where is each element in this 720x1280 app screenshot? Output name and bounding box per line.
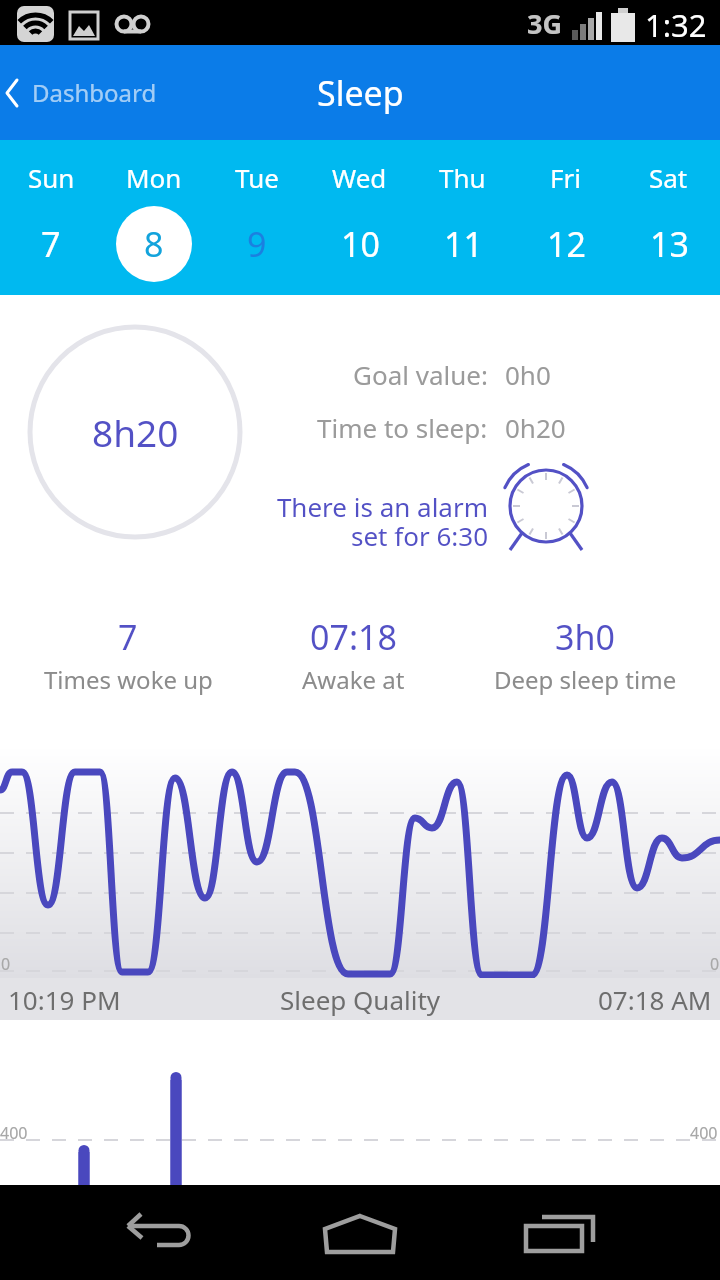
staticText: 0 [1,953,11,975]
staticText: 9 [247,221,267,267]
staticText: Sun [28,160,75,195]
staticText: Time to sleep: [317,410,488,445]
staticText: There is an alarm set for 6:30 [243,489,488,553]
button[interactable]: Dashboard [0,76,157,109]
staticText: 400 [690,1122,718,1144]
button[interactable]: Sat [617,140,720,295]
staticText: 0h0 [505,357,551,392]
staticText: 07:18 AM [598,982,712,1017]
button[interactable]: Mon [102,140,205,295]
staticText: 8 [144,221,164,267]
staticText: 3G [527,5,562,42]
staticText: Fri [550,160,581,195]
staticText: 10 [341,221,380,267]
staticText: Thu [439,160,486,195]
staticText: Wed [332,160,387,195]
staticText: 0h20 [505,410,566,445]
staticText: 0 [710,953,720,975]
staticText: 07:18 [310,614,397,660]
staticText: 8h20 [92,407,179,457]
staticText: 11 [444,221,483,267]
staticText: Sleep [317,70,404,116]
button[interactable] [110,1185,210,1280]
staticText: 1:32 [645,4,707,46]
staticText: Goal value: [353,357,488,392]
staticText: Sat [649,160,688,195]
button[interactable]: Wed [308,140,411,295]
staticText: Sleep Quality [280,982,441,1017]
button[interactable]: Thu [411,140,514,295]
button[interactable]: Tue [205,140,308,295]
button[interactable]: Sun [0,140,102,295]
staticText: Awake at [302,663,405,696]
staticText: 12 [547,221,586,267]
staticText: Tue [235,160,279,195]
staticText: Deep sleep time [494,663,677,696]
staticText: 7 [118,614,138,660]
button[interactable]: Fri [514,140,617,295]
button[interactable] [510,1185,610,1280]
staticText: 3h0 [555,614,615,660]
button[interactable] [312,1185,412,1280]
staticText: Mon [126,160,182,195]
staticText: Times woke up [44,663,213,696]
staticText: 400 [0,1122,28,1144]
staticText: 13 [650,221,689,267]
staticText: Dashboard [32,76,157,109]
staticText: 7 [41,221,61,267]
staticText: 10:19 PM [8,982,121,1017]
